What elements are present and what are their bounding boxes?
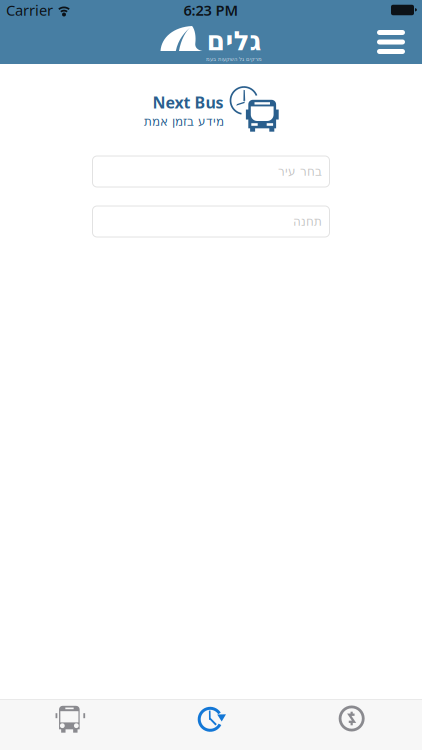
- staticText: מידע בזמן אמת: [143, 115, 223, 128]
- button[interactable]: Next bus: [141, 699, 281, 750]
- staticText: 6:23 PM: [183, 0, 238, 20]
- staticText: בחר עיר: [277, 165, 321, 178]
- staticText: תחנה: [292, 215, 321, 228]
- button[interactable]: בחר עיר: [92, 156, 329, 187]
- staticText: Carrier: [6, 0, 53, 20]
- button[interactable]: Menu: [368, 20, 414, 64]
- staticText: Next Bus: [152, 92, 223, 113]
- button[interactable]: Fares: [281, 699, 422, 750]
- button[interactable]: תחנה: [92, 206, 329, 237]
- staticText: גלים: [206, 26, 261, 56]
- button[interactable]: Lines: [0, 699, 141, 750]
- staticText: מרקים גל השקעות בעמ: [205, 56, 261, 62]
